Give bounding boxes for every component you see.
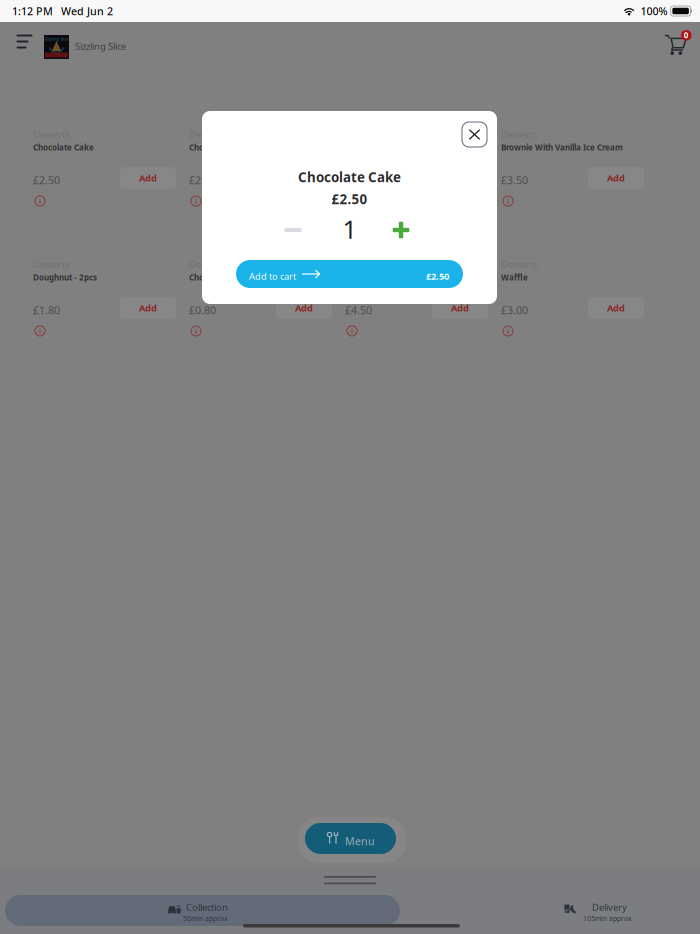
button[interactable]: Increase quantity xyxy=(379,215,423,245)
staticText: Chocolate Mousse xyxy=(189,272,261,283)
staticText: Chocolate Cake xyxy=(298,168,401,186)
staticText: Desserts xyxy=(189,128,225,140)
button[interactable]: Add xyxy=(276,167,332,189)
button[interactable]: Delivery xyxy=(564,895,659,926)
staticText: £3.20 xyxy=(345,173,372,187)
staticText: 50min approx xyxy=(183,914,228,923)
staticText: £2.50 xyxy=(33,173,60,187)
staticText: £1.80 xyxy=(33,303,60,317)
staticText: 105min approx xyxy=(583,914,632,923)
staticText: Desserts xyxy=(501,128,537,140)
staticText: Wed Jun 2 xyxy=(61,4,113,18)
staticText: Add xyxy=(295,302,313,314)
button[interactable]: Open menu xyxy=(9,26,40,57)
staticText: Sizzling Slice xyxy=(75,40,126,52)
staticText: Desserts xyxy=(501,258,537,270)
button[interactable]: Close xyxy=(462,122,487,147)
button[interactable]: Collection xyxy=(5,895,400,926)
staticText: £3.50 xyxy=(501,173,528,187)
staticText: Add xyxy=(139,172,157,184)
staticText: 1 xyxy=(342,212,356,246)
staticText: Menu xyxy=(345,834,375,848)
staticText: Add xyxy=(139,302,157,314)
button[interactable]: Add xyxy=(276,297,332,319)
staticText: Add xyxy=(607,172,625,184)
staticText: Chocolate Fudge Cake xyxy=(189,142,276,153)
staticText: £0.80 xyxy=(189,303,216,317)
staticText: Waffle xyxy=(501,272,528,283)
button[interactable]: Add xyxy=(120,167,176,189)
staticText: 100% xyxy=(641,4,668,18)
staticText: Desserts xyxy=(189,258,225,270)
staticText: Desserts xyxy=(33,258,69,270)
staticText: 0 xyxy=(684,30,689,40)
staticText: Desserts xyxy=(33,128,69,140)
staticText: Desserts xyxy=(345,258,381,270)
staticText: Collection xyxy=(186,901,228,913)
button[interactable]: Add to cart xyxy=(236,260,463,288)
staticText: Delivery xyxy=(592,901,627,913)
staticText: Doughnut - 2pcs xyxy=(33,272,97,283)
staticText: Add xyxy=(607,302,625,314)
staticText: £2.80 xyxy=(189,173,216,187)
staticText: Chocolate Cake xyxy=(33,142,94,153)
button[interactable]: Add xyxy=(120,297,176,319)
staticText: Add xyxy=(295,172,313,184)
button[interactable]: Menu xyxy=(305,823,396,854)
button[interactable]: Cart, 0 items xyxy=(664,28,696,60)
staticText: Sizzling Slice xyxy=(44,36,68,42)
staticText: Add xyxy=(451,302,469,314)
staticText: £2.50 xyxy=(426,270,449,282)
staticText: Add to cart xyxy=(249,270,296,282)
button[interactable]: Decrease quantity xyxy=(271,215,315,245)
button[interactable]: Add xyxy=(432,297,488,319)
button[interactable]: Add xyxy=(588,167,644,189)
staticText: 1:12 PM xyxy=(12,4,53,18)
staticText: £4.50 xyxy=(345,303,372,317)
staticText: Brownie With Vanilla Ice Cream xyxy=(501,142,623,153)
staticText: £2.50 xyxy=(331,190,367,208)
button[interactable]: Add xyxy=(588,297,644,319)
staticText: £3.00 xyxy=(501,303,528,317)
